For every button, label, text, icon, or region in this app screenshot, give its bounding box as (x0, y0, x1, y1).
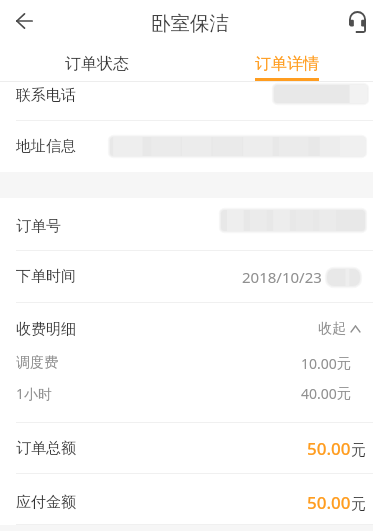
button[interactable]: 订单详情 (231, 44, 343, 82)
staticText: 下单时间 (16, 267, 76, 286)
staticText: 地址信息 (16, 137, 76, 156)
staticText: 2018/10/23 (242, 267, 322, 287)
staticText: 1小时 (16, 384, 53, 403)
button[interactable]: 收费明细 (0, 309, 373, 349)
button[interactable]: 地址信息 (0, 121, 373, 172)
button[interactable]: Customer service (329, 0, 373, 44)
staticText: 联系电话 (16, 86, 76, 105)
button[interactable]: 订单状态 (41, 44, 153, 82)
button[interactable]: 调度费 (0, 347, 373, 379)
staticText: 50.00 (307, 491, 351, 514)
staticText: 元 (337, 385, 351, 403)
staticText: 50.00 (307, 437, 351, 460)
button[interactable]: Back (2, 0, 47, 44)
button[interactable]: 联系电话 (0, 68, 373, 120)
staticText: 订单号 (16, 217, 61, 236)
button[interactable]: 订单总额 (0, 423, 373, 473)
staticText: 40.00 (301, 384, 337, 403)
button[interactable]: 下单时间 (0, 251, 373, 302)
staticText: 元 (351, 441, 366, 460)
staticText: 10.00 (301, 354, 337, 373)
button[interactable]: 应付金额 (0, 474, 373, 524)
staticText: 卧室保洁 (151, 11, 229, 36)
staticText: 元 (337, 355, 351, 373)
staticText: 调度费 (16, 354, 58, 372)
staticText: 收费明细 (16, 320, 76, 339)
staticText: 应付金额 (16, 493, 76, 512)
button[interactable]: 订单号 (0, 198, 373, 250)
staticText: 订单详情 (255, 54, 319, 74)
staticText: 元 (351, 495, 366, 514)
staticText: 收起 (318, 320, 346, 338)
button[interactable]: 1小时 (0, 377, 373, 409)
staticText: 订单状态 (65, 54, 129, 74)
staticText: 订单总额 (16, 439, 76, 458)
